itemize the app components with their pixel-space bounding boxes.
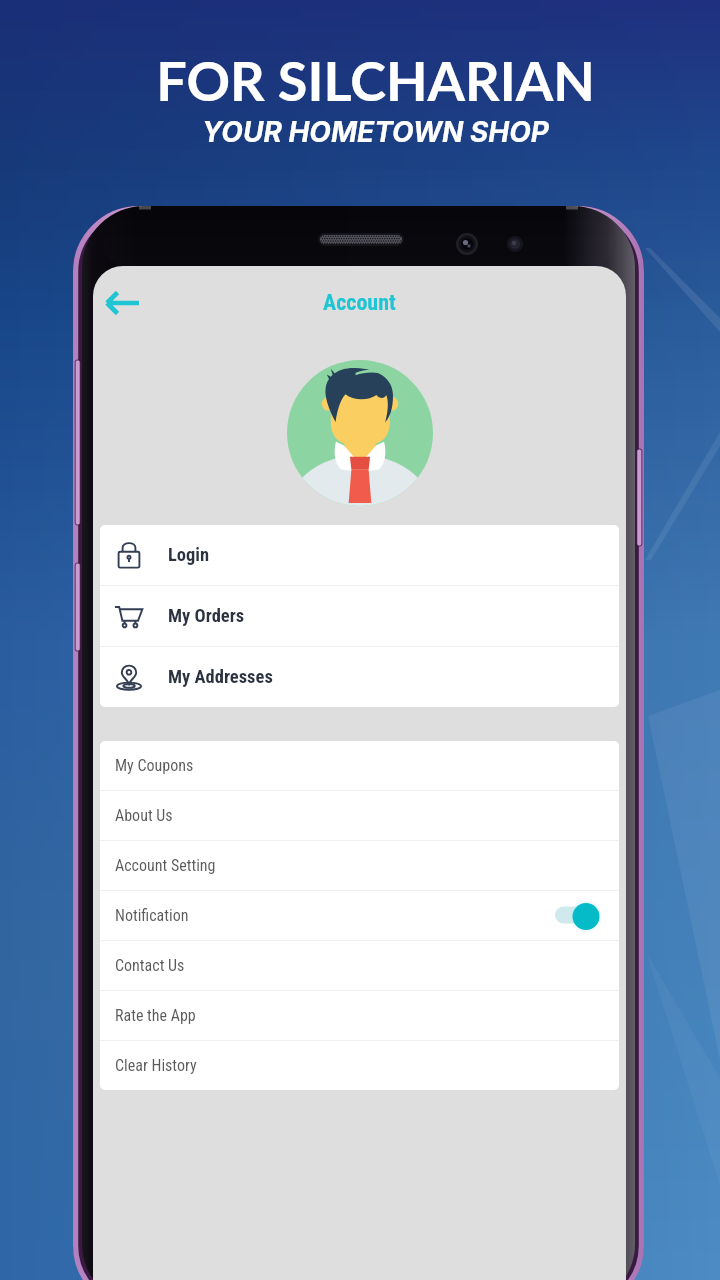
button[interactable]: My Orders [100,586,619,646]
staticText: My Addresses [168,666,273,688]
staticText: YOUR HOMETOWN SHOP [202,115,549,149]
staticText: Rate the App [115,1006,196,1025]
button[interactable]: Contact Us [100,941,619,990]
button[interactable]: Account Setting [100,841,619,890]
staticText: My Coupons [115,756,194,775]
button[interactable]: My Coupons [100,741,619,790]
button[interactable]: Rate the App [100,991,619,1040]
button[interactable]: Clear History [100,1041,619,1090]
staticText: Notification [115,906,189,925]
button[interactable]: My Addresses [100,647,619,707]
staticText: Account [323,290,396,316]
staticText: About Us [115,806,173,825]
button[interactable]: Notification [100,891,619,940]
staticText: Account Setting [115,856,216,875]
staticText: Clear History [115,1056,197,1075]
staticText: Contact Us [115,956,185,975]
staticText: Login [168,544,210,566]
button[interactable]: Back [95,277,149,331]
button[interactable]: Notification toggle [539,893,601,939]
button[interactable]: About Us [100,791,619,840]
staticText: FOR SILCHARIAN [156,48,595,113]
staticText: My Orders [168,605,245,627]
button[interactable]: Login [100,525,619,585]
